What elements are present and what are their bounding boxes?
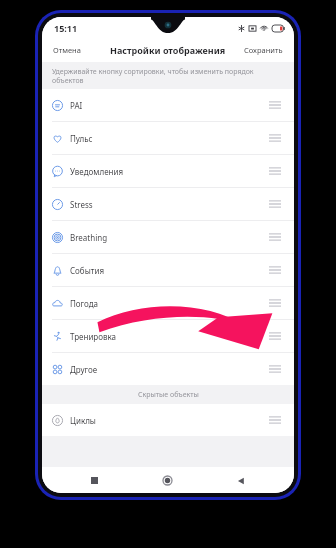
staticText: Другое [70,364,98,375]
staticText: Сохранить [244,45,283,55]
button[interactable]: Сохранить [239,42,288,58]
staticText: События [70,265,105,276]
button[interactable]: Recent apps [86,472,103,489]
button[interactable]: Reorder Breathing [266,230,284,244]
staticText: Breathing [70,232,108,243]
button[interactable]: PAI [42,89,294,121]
button[interactable]: Отмена [48,42,86,58]
staticText: PAI [70,100,83,111]
button[interactable]: Reorder Циклы [266,413,284,427]
staticText: Уведомления [70,166,124,177]
staticText: Циклы [70,415,96,426]
button[interactable]: События [42,254,294,286]
button[interactable]: Другое [42,353,294,385]
button[interactable]: Breathing [42,221,294,253]
button[interactable]: Пульс [42,122,294,154]
button[interactable]: Reorder PAI [266,98,284,112]
button[interactable]: Back [232,472,250,490]
staticText: Отмена [53,45,81,55]
button[interactable]: Тренировка [42,320,294,352]
button[interactable]: Reorder Тренировка [266,329,284,343]
button[interactable]: Home [158,471,177,490]
staticText: Настройки отображения [110,44,226,56]
button[interactable]: Reorder Другое [266,362,284,376]
staticText: Пульс [70,133,93,144]
staticText: Погода [70,298,99,309]
button[interactable]: Reorder Пульс [266,131,284,145]
staticText: Stress [70,199,93,210]
staticText: Скрытые объекты [138,390,199,400]
button[interactable]: Reorder Уведомления [266,164,284,178]
button[interactable]: Погода [42,287,294,319]
staticText: Удерживайте кнопку сортировки, чтобы изм… [52,67,280,85]
button[interactable]: Циклы [42,404,294,436]
button[interactable]: Уведомления [42,155,294,187]
button[interactable]: Reorder События [266,263,284,277]
button[interactable]: Reorder Stress [266,197,284,211]
staticText: 15:11 [54,22,78,34]
button[interactable]: Stress [42,188,294,220]
staticText: Тренировка [70,331,117,342]
button[interactable]: Reorder Погода [266,296,284,310]
